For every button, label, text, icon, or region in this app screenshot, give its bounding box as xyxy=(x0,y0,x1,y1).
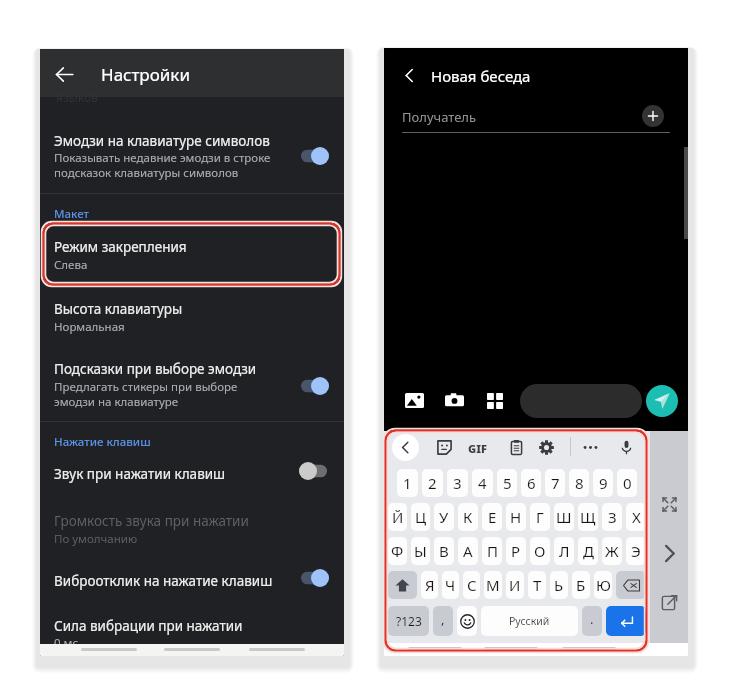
button[interactable]: Camera xyxy=(442,388,467,413)
button[interactable]: В xyxy=(434,537,454,565)
button[interactable]: Enter xyxy=(606,606,646,636)
button[interactable]: Х xyxy=(626,503,646,531)
button[interactable]: ?123 xyxy=(388,606,429,636)
button[interactable]: Ц xyxy=(411,503,430,531)
button[interactable] xyxy=(40,352,344,410)
button[interactable]: 6 xyxy=(521,469,541,497)
staticText: Э xyxy=(631,541,641,561)
button[interactable]: 1 xyxy=(397,469,418,497)
button[interactable]: Back xyxy=(392,434,419,461)
button[interactable]: С xyxy=(463,571,480,599)
button[interactable]: Р xyxy=(506,537,526,565)
staticText: В xyxy=(439,541,449,561)
button[interactable]: 9 xyxy=(593,469,613,497)
button[interactable]: П xyxy=(482,537,502,565)
button[interactable] xyxy=(40,229,344,274)
staticText: Сила вибрации при нажатии xyxy=(54,617,243,635)
staticText: ?123 xyxy=(396,613,422,629)
button[interactable]: Keyboard tool xyxy=(615,436,637,458)
button[interactable] xyxy=(40,611,344,649)
button[interactable] xyxy=(40,292,344,337)
button[interactable]: Space xyxy=(481,606,578,636)
button[interactable]: И xyxy=(506,571,524,599)
button[interactable]: 7 xyxy=(545,469,565,497)
button[interactable]: Apps xyxy=(482,388,507,413)
staticText: С xyxy=(467,575,477,595)
staticText: 7 xyxy=(551,473,560,493)
button[interactable]: Message xyxy=(520,384,642,418)
button[interactable]: А xyxy=(458,537,478,565)
staticText: Высота клавиатуры xyxy=(54,300,183,318)
button[interactable]: Б xyxy=(572,571,590,599)
button[interactable]: К xyxy=(458,503,478,531)
staticText: А xyxy=(463,541,473,561)
button[interactable]: Add recipient xyxy=(642,105,664,127)
button[interactable]: Pop out xyxy=(656,589,682,615)
button[interactable]: Emoji xyxy=(457,606,477,636)
button[interactable]: Send xyxy=(646,385,678,417)
button[interactable]: О xyxy=(530,537,550,565)
button[interactable]: Keyboard tool xyxy=(505,436,527,458)
button[interactable]: Back xyxy=(394,60,424,90)
staticText: Г xyxy=(536,507,544,527)
staticText: Е xyxy=(488,507,497,527)
button[interactable]: GIF xyxy=(468,441,487,456)
button[interactable] xyxy=(40,504,344,552)
button[interactable]: Next xyxy=(656,540,682,566)
button[interactable] xyxy=(40,123,344,185)
staticText: 3 xyxy=(453,473,462,493)
button[interactable]: Э xyxy=(626,537,646,565)
staticText: Ю xyxy=(596,575,611,595)
button[interactable]: Back xyxy=(48,58,80,90)
button[interactable]: Я xyxy=(421,571,438,599)
staticText: Новая беседа xyxy=(431,66,531,86)
button[interactable]: Toggle on xyxy=(301,377,329,395)
button[interactable]: Е xyxy=(482,503,502,531)
button[interactable] xyxy=(40,564,344,600)
button[interactable]: 2 xyxy=(422,469,443,497)
button[interactable]: Й xyxy=(388,503,407,531)
button[interactable]: 5 xyxy=(497,469,517,497)
staticText: Подсказки при выборе эмодзи xyxy=(54,360,257,378)
button[interactable]: Ф xyxy=(388,537,407,565)
staticText: языков xyxy=(56,89,98,105)
button[interactable]: 0 xyxy=(617,469,637,497)
staticText: Б xyxy=(576,575,586,595)
button[interactable]: Д xyxy=(578,537,598,565)
staticText: Русский xyxy=(509,614,550,628)
button[interactable] xyxy=(40,457,344,493)
button[interactable]: Ж xyxy=(602,537,622,565)
button[interactable]: Keyboard tool xyxy=(535,436,557,458)
button[interactable]: Г xyxy=(530,503,550,531)
button[interactable]: М xyxy=(484,571,502,599)
button[interactable]: Expand xyxy=(656,491,682,517)
button[interactable]: Gallery xyxy=(402,388,427,413)
button[interactable]: Period xyxy=(582,606,602,636)
button[interactable]: Toggle on xyxy=(301,569,329,587)
button[interactable]: Backspace xyxy=(616,571,646,599)
button[interactable]: У xyxy=(434,503,454,531)
button[interactable]: 4 xyxy=(472,469,493,497)
staticText: 4 xyxy=(478,473,487,493)
button[interactable]: Т xyxy=(528,571,546,599)
button[interactable]: Keyboard tool xyxy=(433,436,455,458)
button[interactable]: Ш xyxy=(554,503,574,531)
staticText: У xyxy=(439,507,449,527)
button[interactable]: Ы xyxy=(411,537,430,565)
button[interactable]: Toggle on xyxy=(301,147,329,165)
button[interactable]: Л xyxy=(554,537,574,565)
button[interactable]: Ч xyxy=(442,571,459,599)
button[interactable]: Ь xyxy=(550,571,568,599)
button[interactable]: Comma xyxy=(433,606,453,636)
button[interactable]: З xyxy=(602,503,622,531)
button[interactable]: 3 xyxy=(447,469,468,497)
button[interactable]: Н xyxy=(506,503,526,531)
button[interactable]: Toggle off xyxy=(299,462,327,480)
button[interactable]: Щ xyxy=(578,503,598,531)
button[interactable]: Shift xyxy=(388,571,417,599)
button[interactable]: Keyboard tool xyxy=(579,436,601,458)
button[interactable]: 8 xyxy=(569,469,589,497)
button[interactable]: Ю xyxy=(594,571,612,599)
staticText: Я xyxy=(425,575,435,595)
staticText: Р xyxy=(511,541,521,561)
